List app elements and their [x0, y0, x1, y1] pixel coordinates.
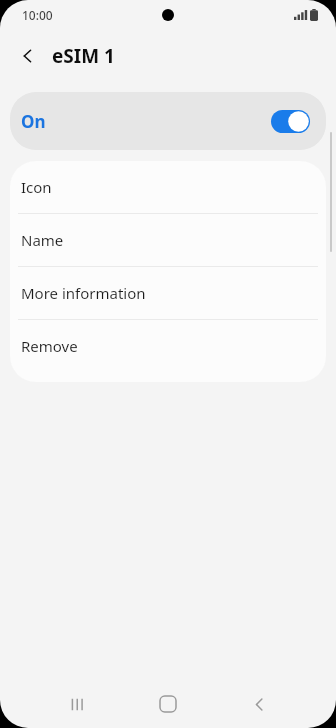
- button[interactable]: Name: [10, 214, 326, 266]
- staticText: Remove: [21, 336, 78, 356]
- button[interactable]: On: [10, 92, 326, 150]
- button[interactable]: More information: [10, 267, 326, 319]
- button[interactable]: Recent apps: [57, 684, 97, 724]
- staticText: On: [21, 110, 46, 133]
- staticText: eSIM 1: [52, 43, 115, 69]
- button[interactable]: Icon: [10, 161, 326, 213]
- button[interactable]: Back: [239, 684, 279, 724]
- button[interactable]: Home: [148, 684, 188, 724]
- staticText: Icon: [21, 177, 52, 197]
- staticText: More information: [21, 283, 146, 303]
- staticText: Name: [21, 230, 64, 250]
- button[interactable]: Remove: [10, 320, 326, 372]
- button[interactable]: Back: [10, 38, 46, 74]
- staticText: 10:00: [22, 7, 53, 23]
